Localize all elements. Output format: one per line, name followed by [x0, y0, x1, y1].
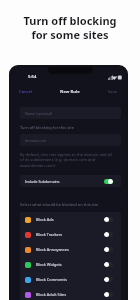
- button[interactable]: Disabled toggle: [104, 217, 113, 222]
- staticText: Block Trackers: [36, 232, 63, 237]
- staticText: Block Widgets: [36, 262, 62, 267]
- staticText: 5:54: [28, 74, 37, 80]
- button[interactable]: domain.com: [20, 134, 121, 146]
- staticText: Block Ads: [36, 217, 54, 222]
- button[interactable]: Block Widgets: [20, 257, 121, 272]
- staticText: Turn off blocking for this site: [20, 125, 74, 130]
- staticText: New Rule: [60, 89, 80, 95]
- button[interactable]: Block Annoyances: [20, 242, 121, 257]
- button[interactable]: Disabled toggle: [104, 277, 113, 282]
- button[interactable]: Include Subdomains: [20, 175, 121, 187]
- button[interactable]: Block Comments: [20, 272, 121, 287]
- staticText: Name (optional): [25, 111, 53, 116]
- button[interactable]: Save: [108, 89, 118, 95]
- staticText: Block Adult Sites: [36, 292, 67, 297]
- staticText: Turn off blocking for some sites: [0, 13, 140, 42]
- button[interactable]: Enabled toggle: [104, 179, 113, 184]
- staticText: Save: [108, 89, 118, 95]
- staticText: Block Annoyances: [36, 247, 69, 252]
- button[interactable]: Block Ads: [20, 212, 121, 227]
- button[interactable]: Disabled toggle: [104, 262, 113, 267]
- button[interactable]: Disabled toggle: [104, 292, 113, 297]
- button[interactable]: Disabled toggle: [104, 232, 113, 237]
- staticText: Block Comments: [36, 277, 67, 282]
- staticText: Cancel: [19, 89, 33, 95]
- button[interactable]: Cancel: [19, 89, 33, 95]
- button[interactable]: Block Trackers: [20, 227, 121, 242]
- staticText: By default, this rule applies to the dom…: [20, 152, 112, 169]
- staticText: Select what should be blocked on this si…: [20, 202, 99, 207]
- staticText: Include Subdomains: [25, 179, 60, 184]
- button[interactable]: Disabled toggle: [104, 247, 113, 252]
- button[interactable]: Name (optional): [20, 107, 121, 119]
- button[interactable]: Block Adult Sites: [20, 287, 121, 300]
- staticText: domain.com: [25, 138, 47, 143]
